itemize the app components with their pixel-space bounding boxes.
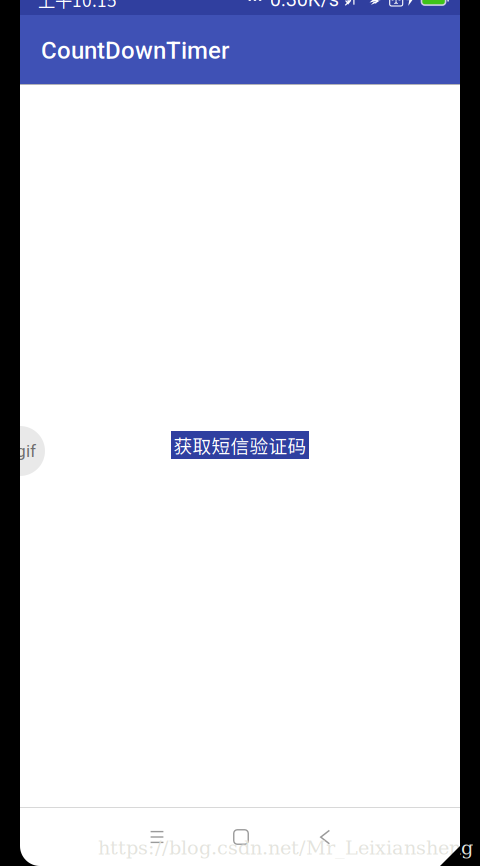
button[interactable]: 获取短信验证码 xyxy=(171,431,309,459)
staticText: 获取短信验证码 xyxy=(173,431,306,458)
staticText: gif xyxy=(16,441,36,461)
button[interactable]: Recents xyxy=(115,814,199,860)
staticText: https://blog.csdn.net/Mr_Leixiansheng xyxy=(98,836,473,859)
button[interactable]: Home xyxy=(199,814,283,860)
button[interactable]: Back xyxy=(283,814,367,860)
staticText: CountDownTimer xyxy=(41,36,229,64)
staticText: 上午10:15 xyxy=(38,0,117,12)
staticText: 0.30K/s xyxy=(270,0,339,11)
